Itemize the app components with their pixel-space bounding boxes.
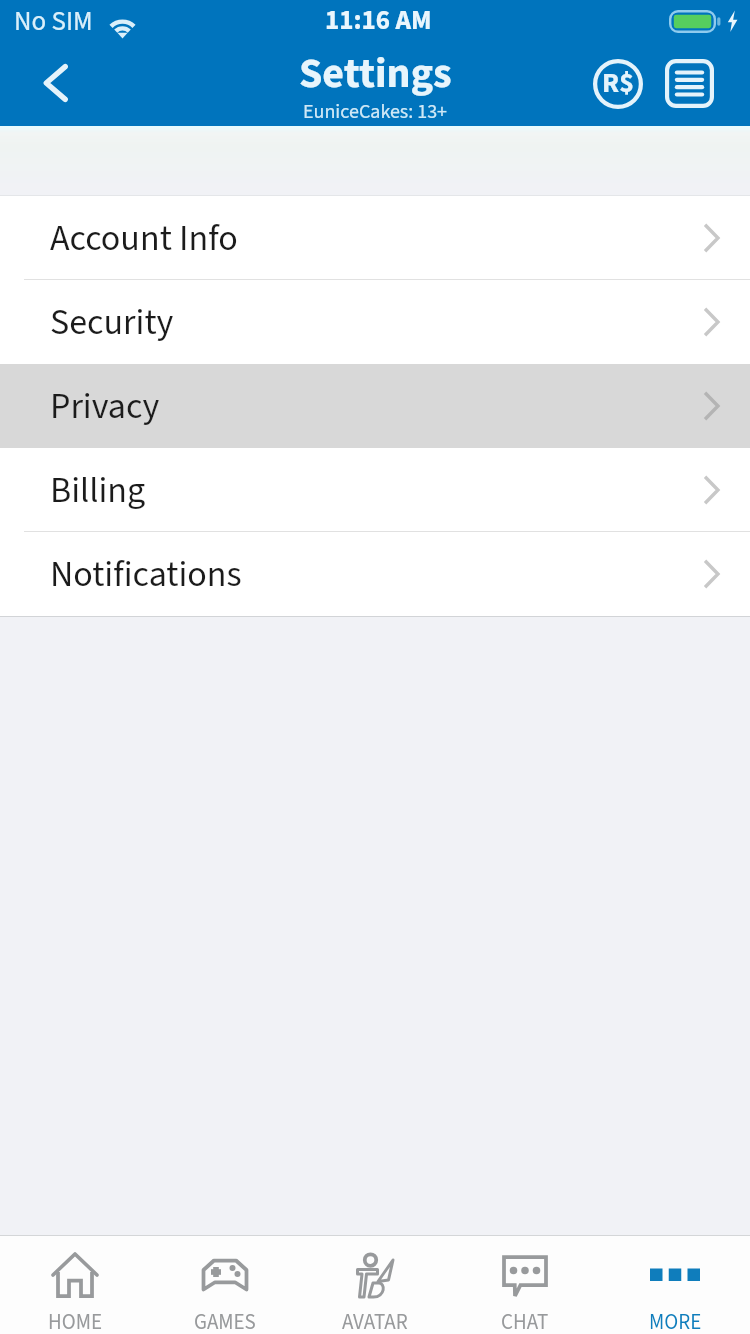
staticText: EuniceCakes: 13+: [303, 98, 448, 126]
staticText: Privacy: [50, 381, 160, 432]
button[interactable]: Notifications: [0, 532, 750, 616]
button[interactable]: GAMES: [150, 1236, 300, 1334]
button[interactable]: Robux: [593, 59, 643, 109]
button[interactable]: Menu: [665, 59, 714, 108]
staticText: Notifications: [50, 549, 242, 600]
staticText: GAMES: [194, 1307, 256, 1334]
staticText: 11:16 AM: [325, 1, 432, 39]
button[interactable]: Back: [0, 44, 110, 126]
button[interactable]: AVATAR: [300, 1236, 450, 1334]
staticText: Security: [50, 297, 174, 348]
staticText: CHAT: [501, 1307, 549, 1334]
button[interactable]: HOME: [0, 1236, 150, 1334]
button[interactable]: Privacy: [0, 364, 750, 448]
staticText: Settings: [299, 44, 452, 104]
button[interactable]: Billing: [0, 448, 750, 532]
button[interactable]: Security: [0, 280, 750, 364]
staticText: MORE: [649, 1307, 702, 1334]
staticText: HOME: [48, 1307, 102, 1334]
staticText: Billing: [50, 465, 146, 516]
staticText: Account Info: [50, 213, 238, 264]
button[interactable]: CHAT: [450, 1236, 600, 1334]
staticText: No SIM: [14, 2, 93, 40]
staticText: R$: [602, 63, 634, 103]
button[interactable]: MORE: [600, 1236, 750, 1334]
button[interactable]: Account Info: [0, 196, 750, 280]
staticText: AVATAR: [342, 1307, 408, 1334]
